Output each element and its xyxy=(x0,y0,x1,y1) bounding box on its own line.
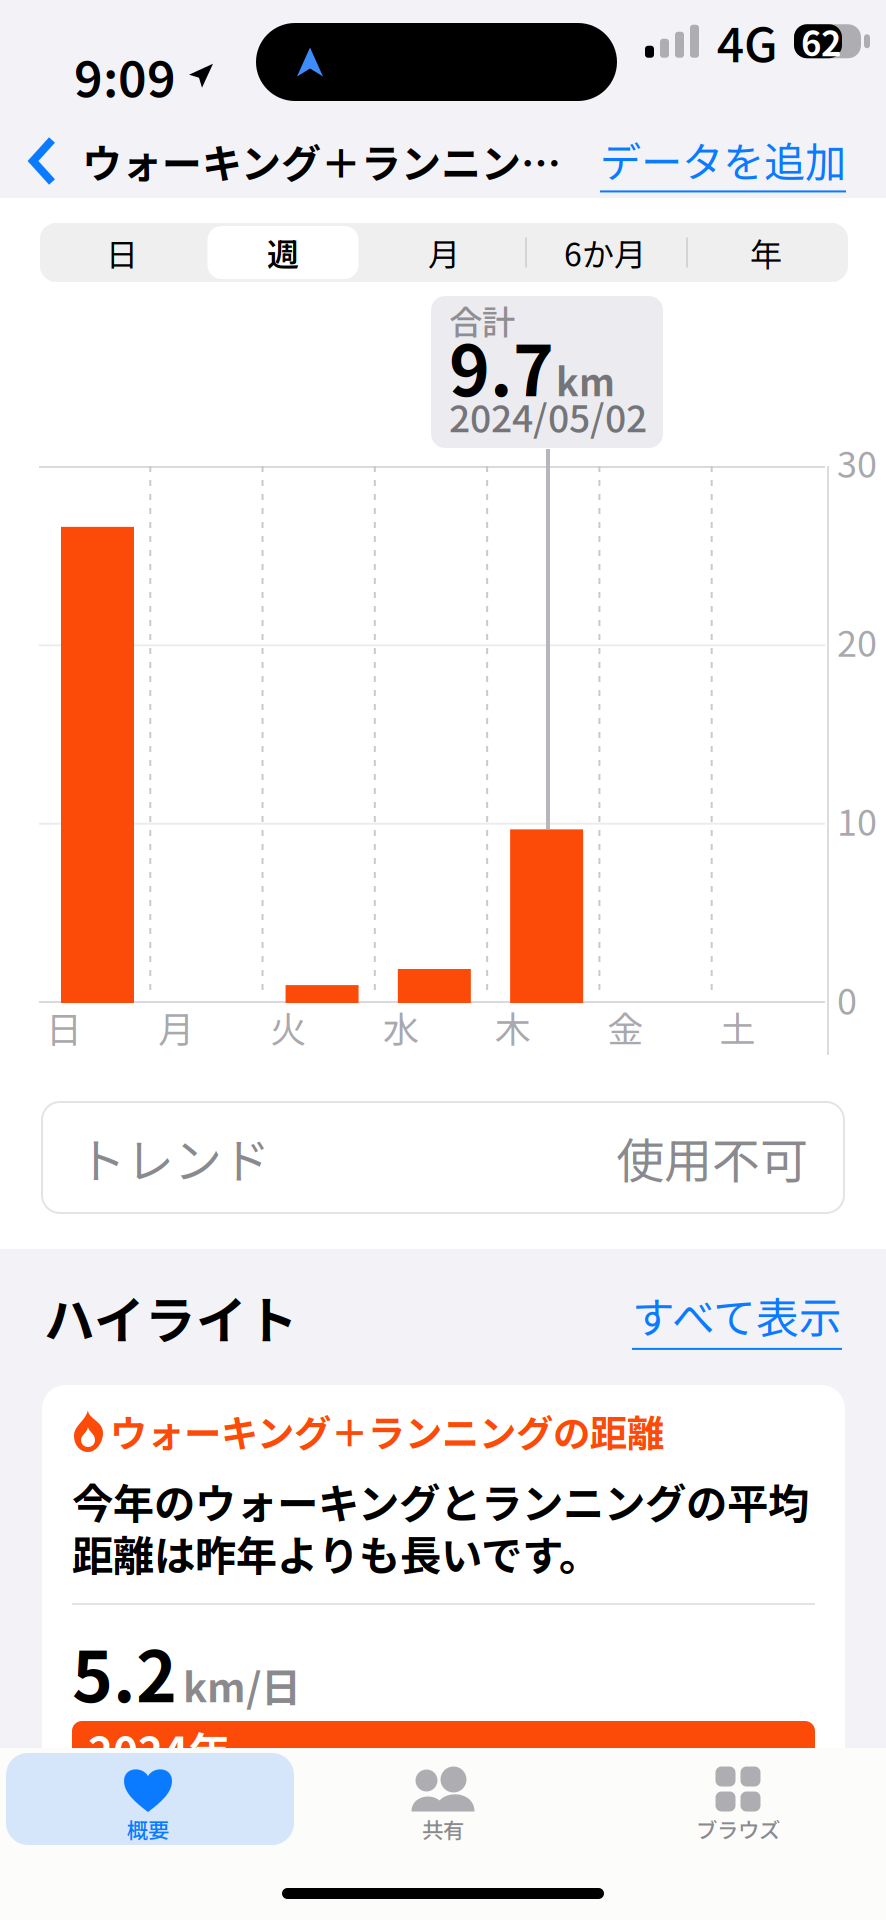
staticText: 62 xyxy=(801,16,841,66)
staticText: 年 xyxy=(750,229,782,276)
staticText: 0 xyxy=(837,973,857,1025)
staticText: 今年のウォーキングとランニングの平均 xyxy=(72,1471,809,1531)
staticText: ハイライト xyxy=(44,1280,298,1354)
staticText: 2024年 xyxy=(88,1719,231,1781)
staticText: 20 xyxy=(837,615,877,667)
button[interactable]: 週 xyxy=(202,223,363,282)
staticText: 距離は昨年よりも長いです。 xyxy=(72,1523,600,1583)
staticText: 月 xyxy=(428,229,460,276)
button[interactable]: すべて表示 xyxy=(632,1284,842,1350)
staticText: 使用不可 xyxy=(616,1123,808,1192)
staticText: 合計 xyxy=(449,296,515,344)
staticText: 日 xyxy=(46,1001,82,1053)
button[interactable]: ブラウズ xyxy=(590,1757,885,1849)
staticText: 月 xyxy=(158,1001,194,1053)
staticText: 概要 xyxy=(127,1814,169,1844)
button[interactable]: 戻る xyxy=(0,136,82,186)
staticText: km xyxy=(556,353,615,407)
staticText: 金 xyxy=(607,1001,643,1053)
button[interactable]: 6か月 xyxy=(524,223,685,282)
staticText: ウォーキング＋ランニン… xyxy=(82,132,561,190)
staticText: 木 xyxy=(495,1001,531,1053)
button[interactable]: 年 xyxy=(685,223,846,282)
staticText: 9:09 xyxy=(74,40,176,111)
staticText: 9.7 xyxy=(449,316,554,416)
staticText: 共有 xyxy=(422,1814,464,1844)
staticText: 土 xyxy=(720,1001,756,1053)
staticText: 6か月 xyxy=(564,229,646,276)
button[interactable]: 日 xyxy=(41,223,202,282)
staticText: 水 xyxy=(383,1001,419,1053)
staticText: 10 xyxy=(837,794,877,846)
staticText: 週 xyxy=(267,229,299,276)
button[interactable]: 概要 xyxy=(0,1757,295,1849)
staticText: 火 xyxy=(271,1001,307,1053)
staticText: km/日 xyxy=(183,1656,301,1714)
staticText: 2024/05/02 xyxy=(449,389,647,443)
staticText: 30 xyxy=(837,436,877,488)
staticText: トレンド xyxy=(78,1123,270,1192)
staticText: 日 xyxy=(106,229,138,276)
button[interactable]: 月 xyxy=(363,223,524,282)
staticText: データを追加 xyxy=(600,130,846,189)
staticText: 5.2 xyxy=(72,1622,177,1722)
button[interactable]: 共有 xyxy=(295,1757,590,1849)
button[interactable]: データを追加 xyxy=(600,130,886,192)
staticText: ウォーキング＋ランニングの距離 xyxy=(110,1404,664,1458)
staticText: ブラウズ xyxy=(696,1814,780,1844)
staticText: すべて表示 xyxy=(632,1284,842,1346)
staticText: 4G xyxy=(717,6,778,76)
